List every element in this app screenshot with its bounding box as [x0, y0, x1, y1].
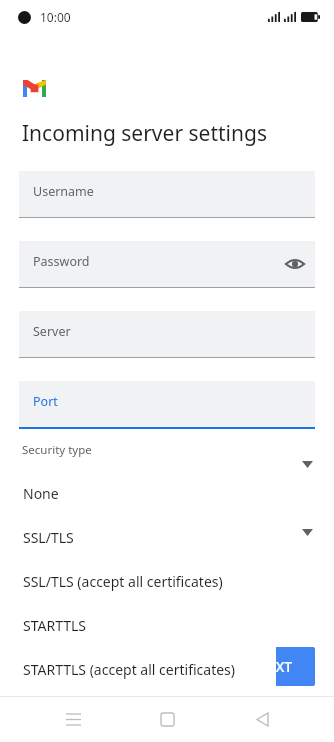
button[interactable]: Server [19, 311, 315, 358]
staticText: STARTTLS (accept all certificates) [23, 660, 235, 679]
button[interactable]: None [14, 471, 276, 515]
staticText: STARTTLS [23, 616, 87, 635]
button[interactable]: SSL/TLS [14, 515, 276, 559]
staticText: Security type [22, 442, 92, 458]
staticText: SSL/TLS [23, 528, 74, 547]
button[interactable]: Delete email from server [19, 510, 315, 554]
button[interactable]: Password [19, 241, 315, 288]
button[interactable]: Port [19, 381, 315, 429]
button[interactable]: Recents [51, 697, 95, 741]
button[interactable]: SSL/TLS (accept all certificates) [14, 559, 276, 603]
button[interactable]: Home [145, 697, 189, 741]
button[interactable]: Back [240, 697, 284, 741]
staticText: 10:00 [40, 9, 71, 25]
staticText: NEXT [257, 657, 293, 676]
other: Open dropdown [302, 461, 313, 468]
other: Open dropdown [302, 529, 313, 536]
button[interactable]: Username [19, 171, 315, 218]
staticText: SSL/TLS (accept all certificates) [23, 572, 223, 591]
other: Show password [285, 254, 305, 274]
button[interactable]: STARTTLS (accept all certificates) [14, 647, 276, 691]
staticText: Username [33, 183, 94, 200]
button[interactable]: STARTTLS [14, 603, 276, 647]
staticText: Password [33, 253, 90, 270]
staticText: Port [33, 393, 58, 410]
staticText: None [23, 484, 59, 503]
button[interactable]: NEXT [235, 647, 315, 686]
staticText: Server [33, 323, 71, 340]
staticText: Incoming server settings [22, 119, 267, 148]
button[interactable]: Security type [19, 442, 315, 486]
